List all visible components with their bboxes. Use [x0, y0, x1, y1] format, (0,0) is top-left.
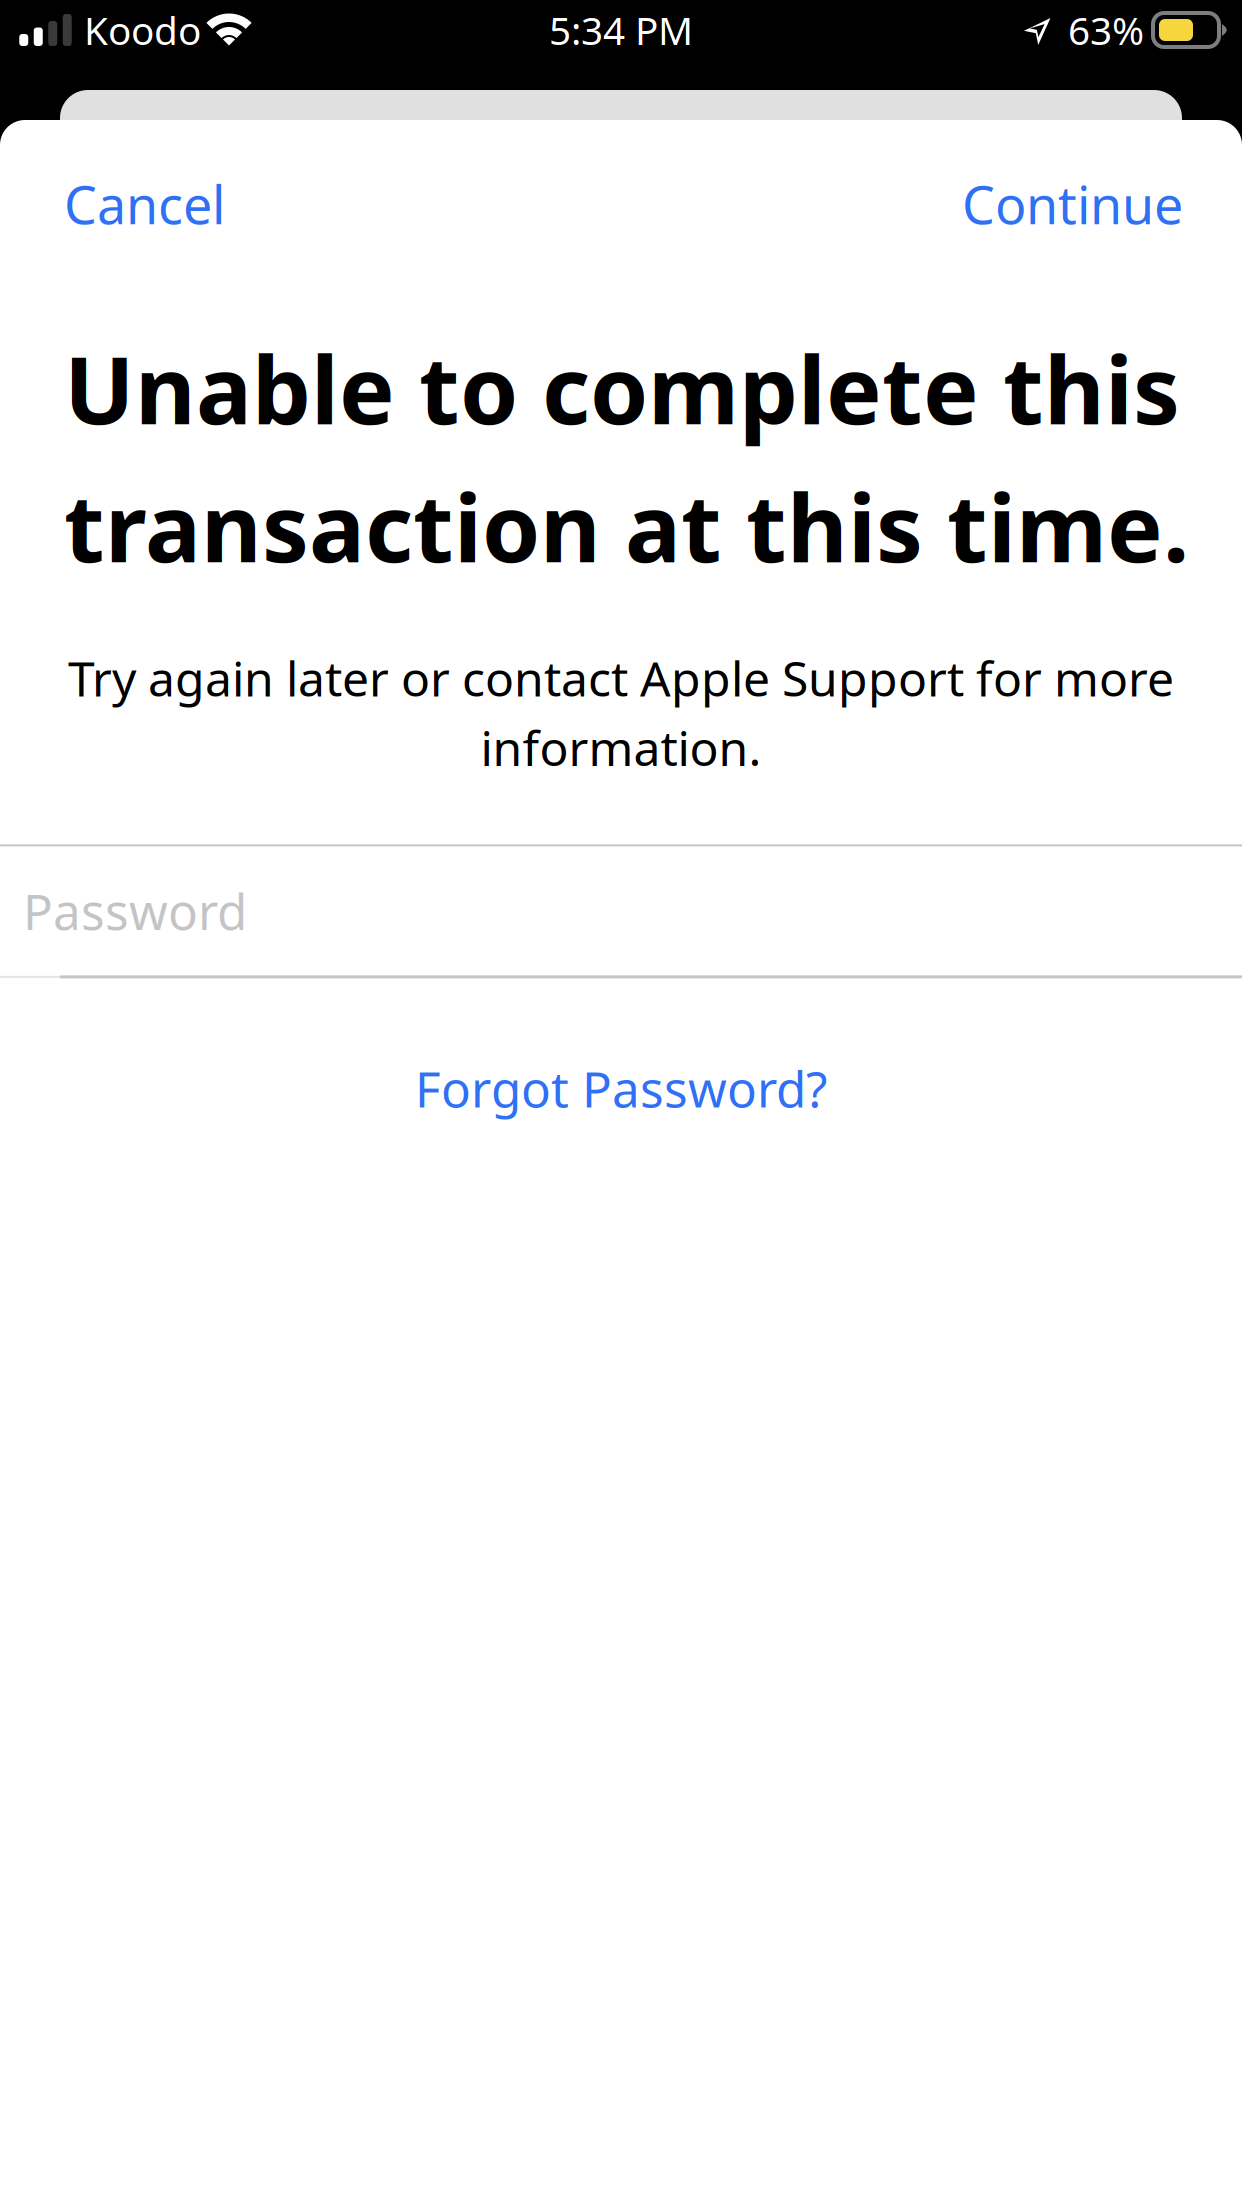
- staticText: 63%: [1068, 4, 1144, 56]
- staticText: Koodo: [84, 4, 201, 56]
- staticText: Continue: [962, 169, 1183, 239]
- staticText: information.: [480, 716, 761, 779]
- button[interactable]: Cancel: [0, 160, 261, 248]
- staticText: Unable to complete this: [64, 326, 1180, 450]
- staticText: Forgot Password?: [415, 1056, 827, 1121]
- button[interactable]: Password: [0, 846, 1242, 975]
- staticText: 5:34 PM: [549, 4, 693, 56]
- staticText: Password: [23, 878, 247, 944]
- staticText: Cancel: [64, 169, 225, 239]
- staticText: Try again later or contact Apple Support…: [68, 646, 1174, 710]
- staticText: transaction at this time.: [64, 464, 1189, 588]
- button[interactable]: Forgot Password?: [0, 1040, 1242, 1136]
- button[interactable]: Continue: [926, 160, 1242, 248]
